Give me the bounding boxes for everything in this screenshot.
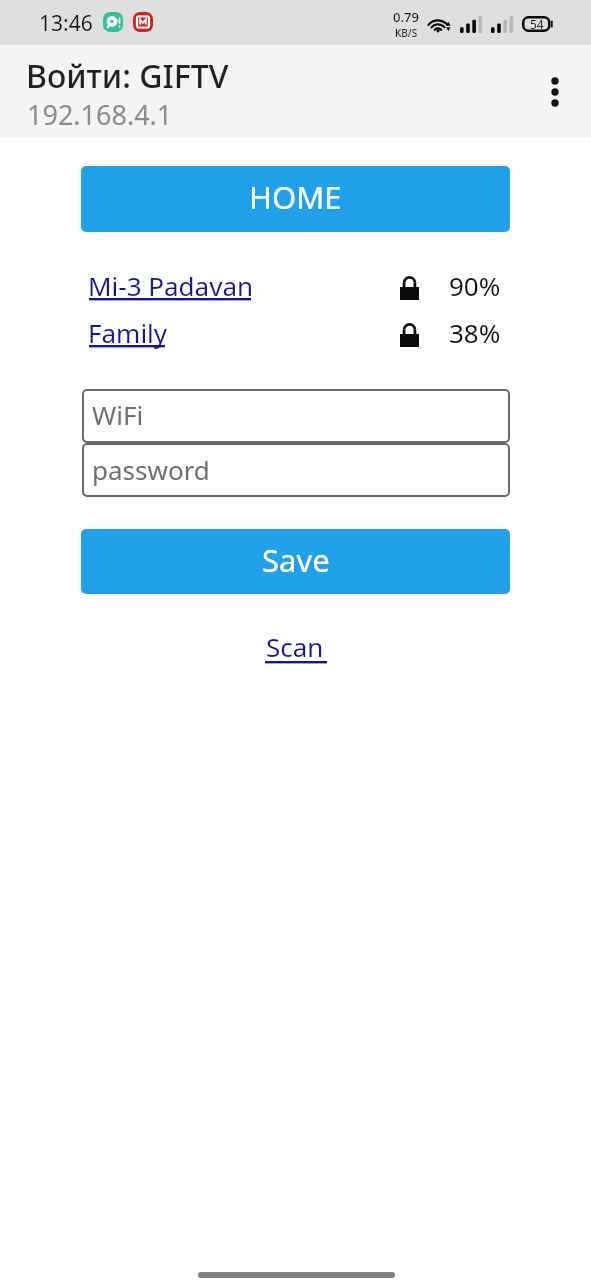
staticText: Scan [266, 629, 324, 664]
button[interactable]: Family [81, 312, 500, 352]
staticText: 0.79 [393, 8, 419, 26]
staticText: KB/S [395, 26, 418, 40]
staticText: password [92, 452, 210, 487]
staticText: Mi-3 Padavan [88, 268, 254, 303]
button[interactable]: Scan [262, 626, 324, 666]
staticText: Войти: GIFTV [26, 54, 229, 98]
button[interactable]: Password field [82, 443, 510, 497]
button[interactable]: HOME [81, 166, 510, 232]
staticText: 38% [449, 315, 501, 350]
staticText: 13:46 [39, 9, 93, 38]
button[interactable]: Mi-3 Padavan [81, 265, 500, 305]
staticText: 54 [530, 16, 544, 32]
staticText: HOME [249, 176, 342, 218]
staticText: 192.168.4.1 [27, 96, 173, 133]
staticText: WiFi [92, 397, 144, 432]
button[interactable]: More options [533, 70, 577, 114]
button[interactable]: Save [81, 529, 510, 594]
staticText: 90% [449, 268, 501, 303]
staticText: Family [88, 315, 168, 350]
staticText: Save [262, 539, 330, 581]
button[interactable]: WiFi network name field [82, 389, 510, 443]
